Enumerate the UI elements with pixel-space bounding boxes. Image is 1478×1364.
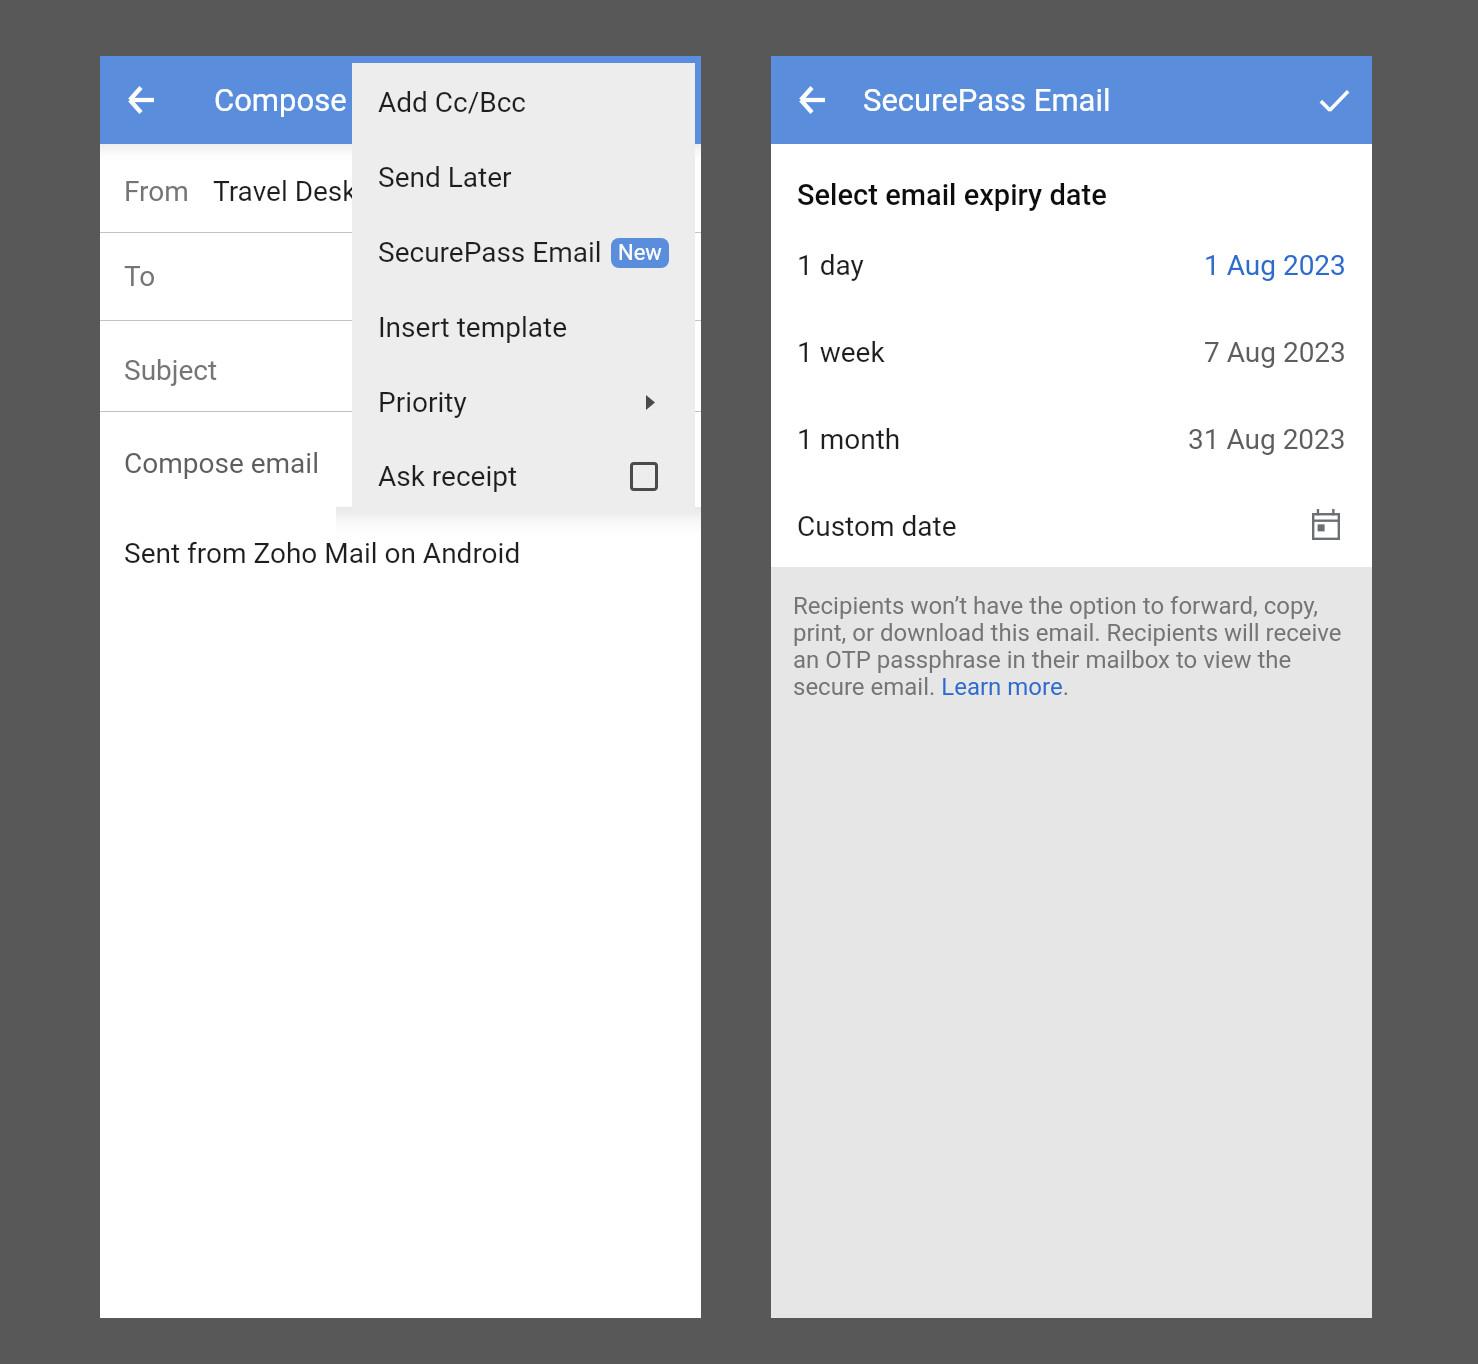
staticText: Ask receipt	[378, 460, 518, 493]
button[interactable]: Navigate up	[105, 64, 177, 136]
staticText: Recipients won’t have the option to forw…	[793, 592, 1354, 701]
staticText: SecurePass Email	[863, 82, 1111, 118]
button[interactable]: To	[100, 233, 701, 320]
button[interactable]: From	[100, 144, 701, 232]
button[interactable]: 1 month	[771, 396, 1372, 483]
staticText: Subject	[124, 354, 218, 387]
staticText: 1 day	[797, 249, 864, 282]
button[interactable]: Send Later	[352, 140, 695, 215]
staticText: Compose email	[124, 447, 319, 480]
staticText: Add Cc/Bcc	[378, 86, 526, 119]
button[interactable]: Add Cc/Bcc	[352, 65, 695, 140]
button[interactable]: Priority	[352, 365, 695, 440]
button[interactable]: 1 week	[771, 309, 1372, 396]
button[interactable]: 1 day	[771, 222, 1372, 309]
button[interactable]: Subject	[100, 321, 701, 411]
staticText: Priority	[378, 386, 467, 419]
button[interactable]: SecurePass Email	[352, 215, 695, 290]
staticText: Custom date	[797, 510, 957, 543]
staticText: 1 month	[797, 423, 901, 456]
staticText: New	[618, 240, 662, 266]
staticText: 31 Aug 2023	[1188, 423, 1346, 456]
button[interactable]: Insert template	[352, 290, 695, 365]
staticText: 7 Aug 2023	[1204, 336, 1346, 369]
staticText: 1 Aug 2023	[1204, 249, 1346, 282]
button[interactable]: Navigate up	[776, 64, 848, 136]
staticText: Travel Desk	[213, 175, 357, 208]
staticText: Send Later	[378, 161, 512, 194]
staticText: To	[124, 260, 156, 293]
staticText: From	[124, 175, 189, 208]
staticText: Compose	[214, 82, 347, 118]
staticText: Insert template	[378, 311, 567, 344]
button[interactable]: Custom date	[771, 483, 1372, 567]
staticText: SecurePass Email	[378, 236, 602, 269]
button[interactable]: Confirm	[1298, 64, 1370, 136]
staticText: 1 week	[797, 336, 885, 369]
button[interactable]: Ask receipt	[352, 440, 695, 513]
staticText: Sent from Zoho Mail on Android	[124, 537, 521, 570]
other: Pick custom date	[1306, 504, 1346, 544]
button[interactable]: Compose email	[100, 412, 701, 514]
staticText: Select email expiry date	[797, 178, 1107, 212]
